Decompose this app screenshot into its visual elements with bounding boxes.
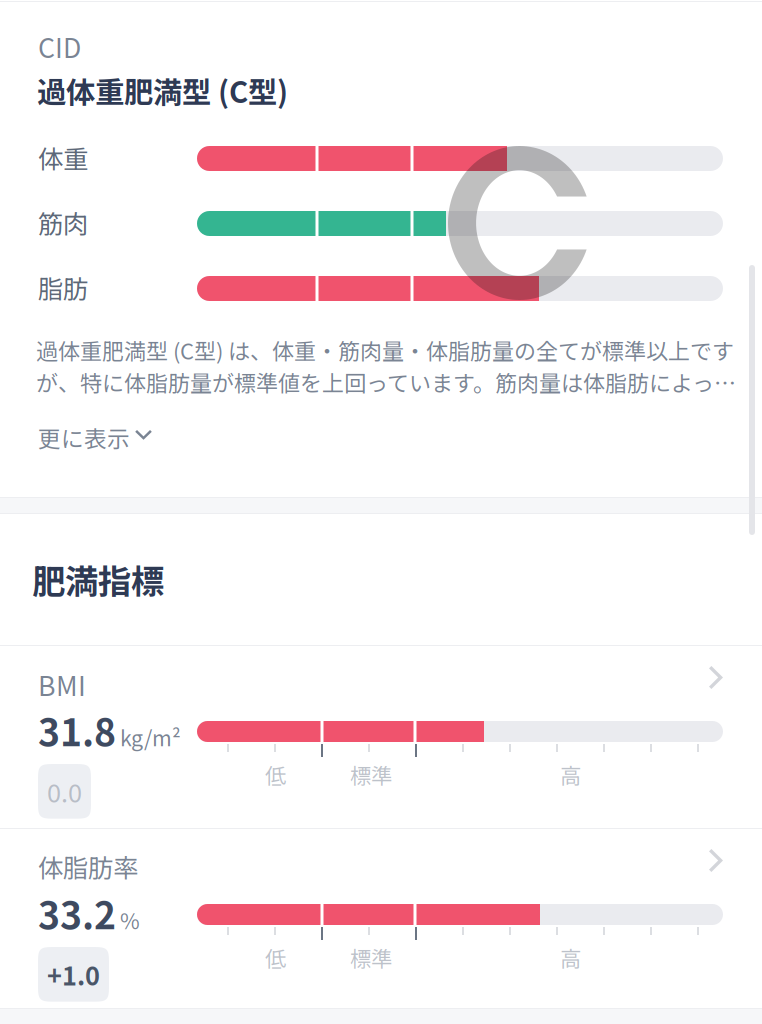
staticText: 標準 <box>350 759 392 790</box>
staticText: 筋肉 <box>38 204 88 241</box>
staticText: 体脂肪率 <box>38 848 138 885</box>
staticText: 高 <box>560 759 581 790</box>
staticText: +1.0 <box>47 956 100 993</box>
staticText: 低 <box>265 759 286 790</box>
staticText: 31.8 <box>38 703 116 757</box>
staticText: 標準 <box>350 942 392 973</box>
staticText: kg/m² <box>120 722 181 752</box>
staticText: % <box>120 905 140 935</box>
staticText: 0.0 <box>47 773 82 810</box>
staticText: 高 <box>560 942 581 973</box>
staticText: 過体重肥満型 (C型) <box>37 69 288 111</box>
button[interactable] <box>0 0 762 1024</box>
staticText: 脂肪 <box>38 269 88 306</box>
staticText: CID <box>38 27 81 66</box>
staticText: 肥満指標 <box>32 555 164 603</box>
staticText: 低 <box>265 942 286 973</box>
staticText: BMI <box>38 665 86 704</box>
staticText: 過体重肥満型 (C型) は、体重・筋肉量・体脂肪量の全てが標準以上ですが、特に体… <box>36 334 736 398</box>
button[interactable] <box>0 0 762 1024</box>
staticText: 体重 <box>38 139 88 176</box>
staticText: 33.2 <box>38 886 116 940</box>
staticText: 更に表示 <box>38 421 130 454</box>
button[interactable]: 更に表示 <box>0 0 762 1024</box>
